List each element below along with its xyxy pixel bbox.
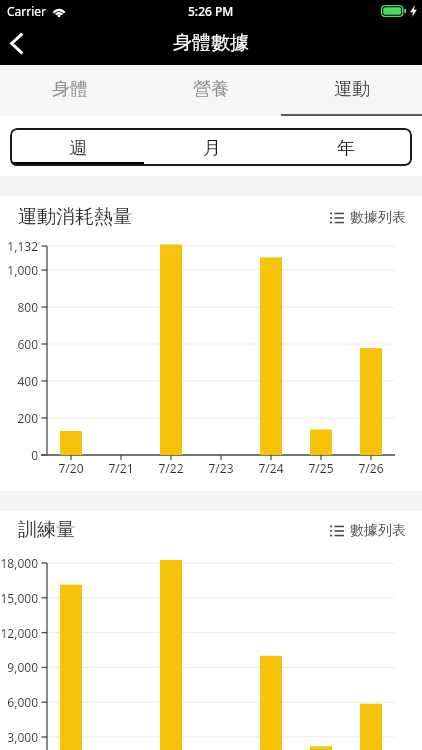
staticText: 5:26 PM <box>188 3 234 19</box>
staticText: 月 <box>203 137 221 160</box>
button[interactable]: 營養 <box>140 65 281 116</box>
staticText: 0 <box>0 447 38 463</box>
staticText: 年 <box>337 137 355 160</box>
staticText: 運動 <box>334 78 370 101</box>
staticText: 6,000 <box>0 694 38 710</box>
staticText: 1,000 <box>0 262 38 278</box>
staticText: 18,000 <box>0 555 38 571</box>
staticText: Carrier <box>7 3 47 19</box>
staticText: 7/21 <box>96 460 146 476</box>
staticText: 1,132 <box>0 238 38 254</box>
button[interactable]: 運動 <box>281 65 422 116</box>
button[interactable]: 年 <box>278 128 412 166</box>
button[interactable]: 數據列表 <box>330 522 406 540</box>
staticText: 12,000 <box>0 625 38 641</box>
staticText: 7/20 <box>46 460 96 476</box>
staticText: 7/23 <box>196 460 246 476</box>
button[interactable]: 月 <box>144 128 278 166</box>
staticText: 訓練量 <box>18 518 75 542</box>
button[interactable]: 數據列表 <box>330 209 406 227</box>
staticText: 200 <box>0 410 38 426</box>
staticText: 身體 <box>52 78 88 101</box>
staticText: 運動消耗熱量 <box>18 205 132 229</box>
staticText: 7/22 <box>146 460 196 476</box>
staticText: 15,000 <box>0 590 38 606</box>
staticText: 9,000 <box>0 659 38 675</box>
staticText: 週 <box>69 137 87 160</box>
staticText: 數據列表 <box>350 209 406 227</box>
button[interactable]: 週 <box>10 128 144 166</box>
staticText: 數據列表 <box>350 522 406 540</box>
staticText: 營養 <box>193 78 229 101</box>
button[interactable]: 身體 <box>0 65 140 116</box>
staticText: 3,000 <box>0 729 38 745</box>
staticText: 7/24 <box>246 460 296 476</box>
staticText: 600 <box>0 336 38 352</box>
staticText: 7/26 <box>346 460 396 476</box>
staticText: 800 <box>0 299 38 315</box>
staticText: 身體數據 <box>173 31 249 55</box>
button[interactable]: Back <box>0 21 34 65</box>
staticText: 7/25 <box>296 460 346 476</box>
staticText: 400 <box>0 373 38 389</box>
